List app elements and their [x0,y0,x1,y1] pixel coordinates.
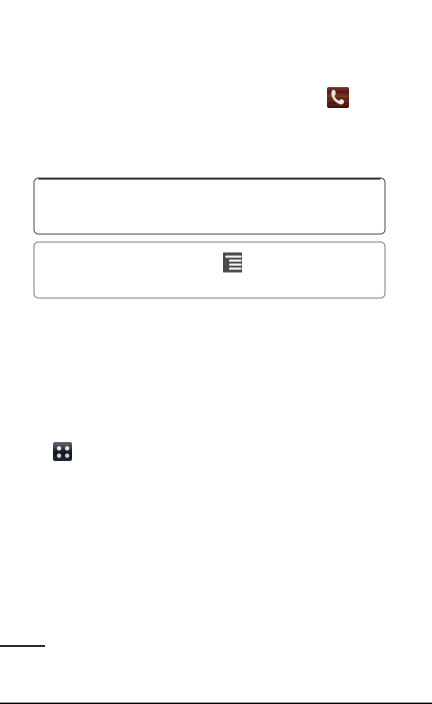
button[interactable]: Apps [53,442,72,461]
button[interactable]: Search input [34,178,385,234]
button[interactable]: Call us [327,87,349,108]
button[interactable]: Message input [34,242,385,298]
